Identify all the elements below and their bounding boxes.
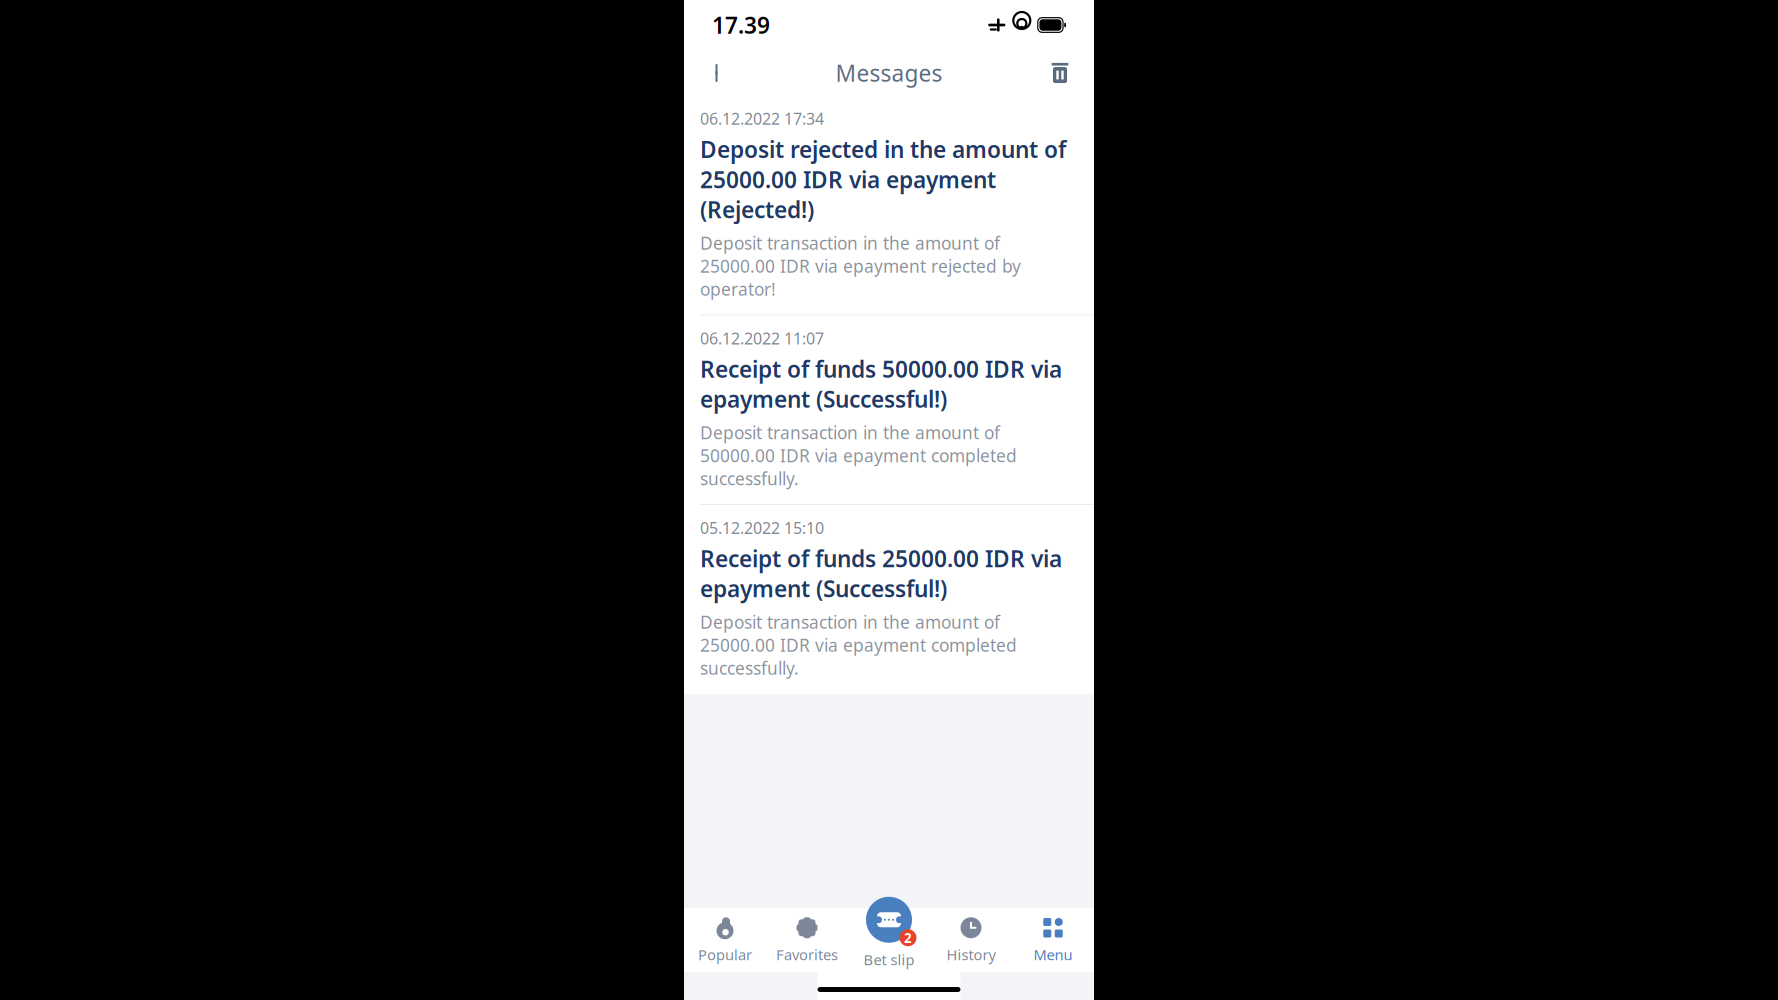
staticText: Menu [1033, 945, 1072, 964]
staticText: History [946, 945, 995, 964]
button[interactable]: Favorites [766, 908, 848, 972]
staticText: 17.39 [712, 10, 770, 40]
staticText: Deposit transaction in the amount of 250… [700, 232, 1021, 301]
staticText: Receipt of funds 50000.00 IDR via epayme… [700, 354, 1062, 414]
staticText: Deposit transaction in the amount of 500… [700, 421, 1017, 490]
button[interactable]: Popular [684, 908, 766, 972]
button[interactable]: Menu [1012, 908, 1094, 972]
button[interactable]: 05.12.2022 15:10 [684, 505, 1094, 694]
staticText: Favorites [776, 945, 838, 964]
button[interactable]: 06.12.2022 17:34 [684, 96, 1094, 315]
button[interactable]: History [930, 908, 1012, 972]
staticText: Popular [698, 945, 752, 964]
button[interactable]: Delete all messages [1038, 51, 1082, 95]
staticText: Messages [835, 58, 942, 88]
button[interactable]: Back [696, 51, 740, 95]
staticText: 06.12.2022 17:34 [700, 108, 824, 129]
staticText: Deposit rejected in the amount of 25000.… [700, 134, 1066, 224]
button[interactable]: 06.12.2022 11:07 [684, 316, 1094, 504]
staticText: 05.12.2022 15:10 [700, 517, 824, 538]
staticText: Bet slip [863, 950, 914, 969]
staticText: 2 [904, 929, 912, 947]
staticText: Deposit transaction in the amount of 250… [700, 611, 1017, 680]
button[interactable]: 2 [848, 901, 930, 979]
staticText: 06.12.2022 11:07 [700, 328, 824, 349]
staticText: Receipt of funds 25000.00 IDR via epayme… [700, 543, 1062, 604]
